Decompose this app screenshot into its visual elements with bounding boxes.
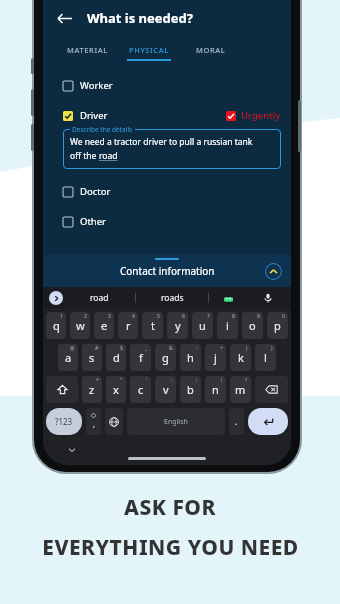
staticText: EVERYTHING YOU NEED	[42, 533, 299, 562]
staticText: 8	[232, 313, 235, 320]
staticText: ?	[245, 377, 248, 384]
button[interactable]: Hide keyboard	[65, 443, 79, 457]
button[interactable]: z	[82, 376, 102, 403]
staticText: "	[120, 377, 123, 384]
button[interactable]: g	[155, 344, 176, 371]
button[interactable]: ?123	[46, 408, 82, 435]
staticText: Driver	[80, 109, 108, 122]
staticText: s	[89, 350, 95, 365]
button[interactable]: Driver	[63, 109, 108, 122]
staticText: @	[70, 345, 75, 352]
button[interactable]: a	[58, 344, 78, 371]
button[interactable]: road	[63, 292, 135, 304]
staticText: off the	[70, 150, 99, 162]
button[interactable]: MATERIAL	[63, 45, 111, 61]
button[interactable]: k	[230, 344, 251, 371]
button[interactable]: b	[180, 376, 201, 403]
staticText: d	[113, 350, 120, 365]
staticText: road	[90, 292, 109, 304]
button[interactable]: Urgently	[226, 109, 281, 122]
button[interactable]: i	[217, 312, 238, 339]
staticText: ?123	[55, 416, 73, 427]
staticText: m	[235, 382, 246, 397]
button[interactable]: l	[255, 344, 276, 371]
staticText: x	[113, 382, 119, 397]
button[interactable]: q	[46, 312, 66, 339]
button[interactable]: Back	[51, 5, 77, 31]
staticText: h	[187, 350, 194, 365]
button[interactable]: Contact information	[43, 255, 291, 287]
button[interactable]: PHYSICAL	[125, 45, 173, 61]
staticText: MATERIAL	[67, 45, 108, 55]
button[interactable]: .	[229, 408, 244, 435]
staticText: p	[274, 318, 281, 333]
button[interactable]: English	[127, 408, 225, 435]
staticText: )	[271, 345, 273, 352]
button[interactable]: e	[94, 312, 114, 339]
button[interactable]: We need a tractor driver to pull a russi…	[63, 129, 281, 169]
staticText: 0	[282, 313, 285, 320]
button[interactable]: Doctor	[43, 185, 291, 198]
staticText: Worker	[80, 79, 113, 92]
staticText: _	[145, 345, 148, 352]
staticText: ;	[196, 377, 198, 384]
staticText: road	[99, 150, 118, 162]
staticText: Urgently	[241, 109, 281, 122]
button[interactable]: p	[267, 312, 288, 339]
button[interactable]: Emoji	[209, 287, 248, 309]
button[interactable]: Voice input	[248, 287, 287, 309]
staticText: e	[101, 318, 108, 333]
button[interactable]: Expand contact information	[265, 263, 282, 280]
staticText: ,	[93, 420, 95, 430]
button[interactable]: u	[192, 312, 213, 339]
button[interactable]: v	[155, 376, 176, 403]
button[interactable]: n	[205, 376, 226, 403]
staticText: 6	[182, 313, 185, 320]
staticText: i	[226, 318, 229, 333]
button[interactable]: Worker	[43, 79, 291, 92]
staticText: z	[89, 382, 95, 397]
button[interactable]: t	[142, 312, 163, 339]
staticText: What is needed?	[87, 9, 193, 27]
staticText: g	[162, 350, 169, 365]
staticText: We need a tractor driver to pull a russi…	[70, 136, 253, 148]
button[interactable]: s	[82, 344, 102, 371]
staticText: 4	[132, 313, 135, 320]
button[interactable]: j	[205, 344, 226, 371]
button[interactable]: d	[106, 344, 126, 371]
staticText: v	[163, 382, 169, 397]
staticText: roads	[161, 292, 184, 304]
button[interactable]: w	[70, 312, 90, 339]
button[interactable]: c	[130, 376, 151, 403]
button[interactable]: x	[106, 376, 126, 403]
button[interactable]: Shift	[46, 376, 78, 403]
staticText: :	[171, 377, 173, 384]
button[interactable]: Other	[43, 215, 291, 228]
staticText: 5	[157, 313, 160, 320]
button[interactable]: roads	[136, 292, 208, 304]
staticText: t	[151, 318, 155, 333]
button[interactable]: o	[242, 312, 263, 339]
staticText: 9	[257, 313, 260, 320]
button[interactable]: MORAL	[187, 45, 235, 61]
staticText: Other	[80, 215, 107, 228]
button[interactable]: Back	[43, 3, 291, 33]
button[interactable]: More suggestions	[49, 291, 63, 305]
button[interactable]: Change language	[105, 408, 123, 435]
button[interactable]: f	[130, 344, 151, 371]
button[interactable]: r	[118, 312, 138, 339]
button[interactable]: Comma and settings	[86, 408, 101, 435]
button[interactable]: Backspace	[255, 376, 288, 403]
button[interactable]: y	[167, 312, 188, 339]
staticText: $	[120, 345, 123, 352]
staticText: j	[214, 350, 217, 365]
staticText: r	[126, 318, 131, 333]
staticText: f	[139, 350, 143, 365]
button[interactable]: m	[230, 376, 251, 403]
staticText: n	[212, 382, 219, 397]
button[interactable]: Enter	[248, 408, 288, 435]
staticText: !	[221, 377, 223, 384]
staticText: MORAL	[196, 45, 226, 55]
button[interactable]: h	[180, 344, 201, 371]
staticText: *	[96, 377, 99, 384]
